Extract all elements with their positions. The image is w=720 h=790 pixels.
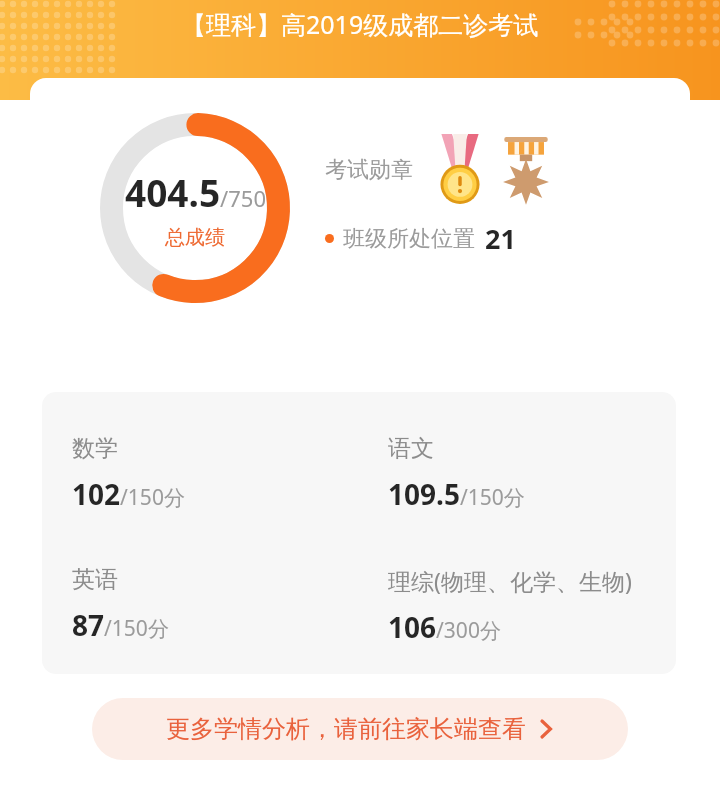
staticText: 数学 [72, 434, 118, 463]
staticText: 理综(物理、化学、生物) [388, 565, 632, 596]
staticText: 考试勋章 [325, 156, 413, 184]
staticText: 87/150分 [72, 606, 169, 644]
staticText: 109.5/150分 [388, 475, 525, 513]
staticText: 更多学情分析，请前往家长端查看 [166, 714, 526, 744]
staticText: 102/150分 [72, 475, 185, 513]
staticText: 总成绩 [165, 225, 225, 250]
staticText: 【理科】高2019级成都二诊考试 [181, 7, 539, 41]
other: 前往 [538, 721, 554, 737]
staticText: 英语 [72, 565, 118, 594]
staticText: 106/300分 [388, 608, 501, 646]
staticText: 404.5/750 [125, 167, 266, 217]
staticText: 班级所处位置 [343, 225, 475, 253]
staticText: 语文 [388, 434, 434, 463]
button[interactable]: 更多学情分析，请前往家长端查看 [92, 698, 628, 760]
staticText: 21 [485, 220, 516, 257]
